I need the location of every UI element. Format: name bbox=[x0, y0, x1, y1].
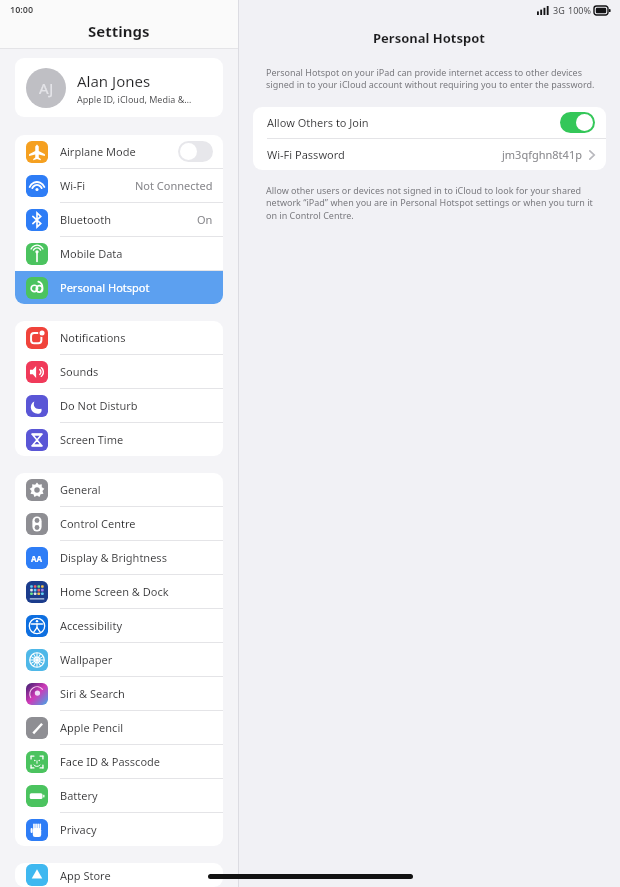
staticText: Face ID & Passcode bbox=[60, 754, 161, 769]
staticText: 3G bbox=[553, 4, 565, 16]
button[interactable]: Mobile Data bbox=[15, 237, 223, 270]
button[interactable]: Personal Hotspot bbox=[15, 271, 223, 304]
button[interactable]: Bluetooth bbox=[15, 203, 223, 236]
button[interactable]: App Store bbox=[15, 863, 223, 887]
staticText: 10:00 bbox=[10, 3, 34, 15]
staticText: Personal Hotspot bbox=[373, 29, 486, 47]
button[interactable]: Apple Pencil bbox=[15, 711, 223, 744]
button[interactable]: Wi-Fi Password bbox=[253, 139, 606, 170]
button[interactable]: AA bbox=[15, 541, 223, 574]
staticText: General bbox=[60, 482, 101, 497]
button[interactable]: Toggle off bbox=[178, 141, 213, 162]
staticText: jm3qfghn8t41p bbox=[502, 147, 582, 162]
button[interactable]: General bbox=[15, 473, 223, 506]
staticText: Battery bbox=[60, 788, 98, 803]
staticText: Apple ID, iCloud, Media &… bbox=[77, 93, 192, 105]
button[interactable]: Wi-Fi bbox=[15, 169, 223, 202]
staticText: Mobile Data bbox=[60, 246, 123, 261]
button[interactable]: Toggle on bbox=[560, 112, 595, 133]
staticText: Screen Time bbox=[60, 432, 124, 447]
button[interactable]: Accessibility bbox=[15, 609, 223, 642]
staticText: App Store bbox=[60, 868, 111, 883]
staticText: Apple Pencil bbox=[60, 720, 124, 735]
staticText: Alan Jones bbox=[77, 71, 151, 91]
button[interactable]: Face ID & Passcode bbox=[15, 745, 223, 778]
staticText: Settings bbox=[88, 21, 150, 41]
staticText: Control Centre bbox=[60, 516, 136, 531]
staticText: Wi-Fi Password bbox=[267, 147, 345, 162]
button[interactable]: Allow Others to Join bbox=[253, 107, 606, 138]
staticText: Airplane Mode bbox=[60, 144, 136, 159]
staticText: Bluetooth bbox=[60, 212, 112, 227]
button[interactable]: Siri & Search bbox=[15, 677, 223, 710]
button[interactable]: Privacy bbox=[15, 813, 223, 846]
staticText: Sounds bbox=[60, 364, 99, 379]
button[interactable]: Notifications bbox=[15, 321, 223, 354]
staticText: Personal Hotspot bbox=[60, 280, 150, 295]
staticText: Personal Hotspot on your iPad can provid… bbox=[266, 66, 600, 91]
button[interactable]: AJ bbox=[15, 58, 223, 117]
button[interactable]: Sounds bbox=[15, 355, 223, 388]
staticText: Not Connected bbox=[135, 178, 213, 193]
button[interactable]: Do Not Disturb bbox=[15, 389, 223, 422]
button[interactable]: Home Screen & Dock bbox=[15, 575, 223, 608]
staticText: Siri & Search bbox=[60, 686, 125, 701]
staticText: Wi-Fi bbox=[60, 178, 86, 193]
staticText: Display & Brightness bbox=[60, 550, 167, 565]
staticText: AJ bbox=[39, 78, 54, 98]
button[interactable]: Battery bbox=[15, 779, 223, 812]
staticText: Home Screen & Dock bbox=[60, 584, 169, 599]
staticText: 100% bbox=[568, 4, 591, 16]
staticText: On bbox=[197, 212, 213, 227]
staticText: Allow Others to Join bbox=[267, 115, 369, 130]
staticText: AA bbox=[31, 553, 43, 564]
button[interactable]: Screen Time bbox=[15, 423, 223, 456]
button[interactable]: Airplane Mode bbox=[15, 135, 223, 168]
staticText: Wallpaper bbox=[60, 652, 113, 667]
button[interactable]: Wallpaper bbox=[15, 643, 223, 676]
staticText: Do Not Disturb bbox=[60, 398, 138, 413]
staticText: Privacy bbox=[60, 822, 97, 837]
staticText: Accessibility bbox=[60, 618, 123, 633]
staticText: Allow other users or devices not signed … bbox=[266, 184, 600, 222]
staticText: Notifications bbox=[60, 330, 126, 345]
button[interactable]: Control Centre bbox=[15, 507, 223, 540]
